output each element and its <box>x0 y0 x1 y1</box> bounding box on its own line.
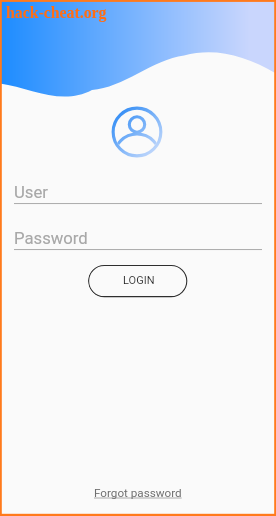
button[interactable]: User <box>0 0 276 204</box>
staticText: Forgot password <box>94 486 182 500</box>
staticText: hack-cheat.org <box>6 4 107 21</box>
staticText: LOGIN <box>123 274 155 287</box>
button[interactable]: LOGIN <box>88 264 188 298</box>
staticText: Password <box>14 229 88 249</box>
button[interactable]: Forgot password <box>88 484 188 502</box>
staticText: User <box>14 183 48 203</box>
button[interactable]: Password <box>0 0 276 250</box>
